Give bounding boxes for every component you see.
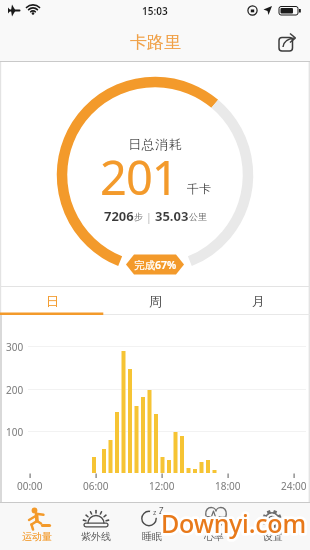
button[interactable]: 完成67% xyxy=(126,254,184,275)
staticText: 卡路里 xyxy=(130,32,181,53)
staticText: 12:00 xyxy=(149,479,175,493)
staticText: 心率 xyxy=(204,530,224,543)
staticText: 完成67% xyxy=(134,258,177,272)
staticText: Downyi.com xyxy=(161,506,306,540)
staticText: 300 xyxy=(6,340,24,354)
staticText: Downyi.com xyxy=(161,506,306,540)
staticText: 设置 xyxy=(263,530,283,543)
staticText: 日总消耗 xyxy=(128,136,182,152)
staticText: 24:00 xyxy=(281,479,307,493)
staticText: 公里 xyxy=(189,211,207,222)
staticText: 100 xyxy=(6,425,24,439)
staticText: 日 xyxy=(46,293,59,309)
button[interactable] xyxy=(244,502,302,550)
button[interactable] xyxy=(67,502,125,550)
button[interactable]: 月 xyxy=(207,287,310,314)
staticText: 运动量 xyxy=(22,530,52,543)
button[interactable] xyxy=(123,502,181,550)
staticText: | xyxy=(143,209,155,224)
staticText: 18:00 xyxy=(215,479,241,493)
staticText: 15:03 xyxy=(142,4,168,18)
button[interactable] xyxy=(185,502,243,550)
staticText: 200 xyxy=(6,383,24,397)
staticText: 步 xyxy=(134,211,143,222)
staticText: 06:00 xyxy=(83,479,109,493)
staticText: z xyxy=(153,508,157,518)
button[interactable] xyxy=(8,502,66,550)
staticText: 7206 xyxy=(104,207,134,225)
staticText: 周 xyxy=(149,293,162,309)
staticText: 睡眠 xyxy=(142,530,162,543)
staticText: 紫外线 xyxy=(81,530,111,543)
staticText: Z xyxy=(159,505,164,516)
staticText: 千卡 xyxy=(187,181,211,196)
button[interactable]: 日 xyxy=(0,287,104,314)
staticText: 月 xyxy=(252,293,265,309)
button[interactable] xyxy=(272,30,302,58)
staticText: 201 xyxy=(100,145,178,209)
staticText: 35.03 xyxy=(155,207,189,225)
button[interactable]: 周 xyxy=(104,287,207,314)
staticText: 00:00 xyxy=(17,479,43,493)
